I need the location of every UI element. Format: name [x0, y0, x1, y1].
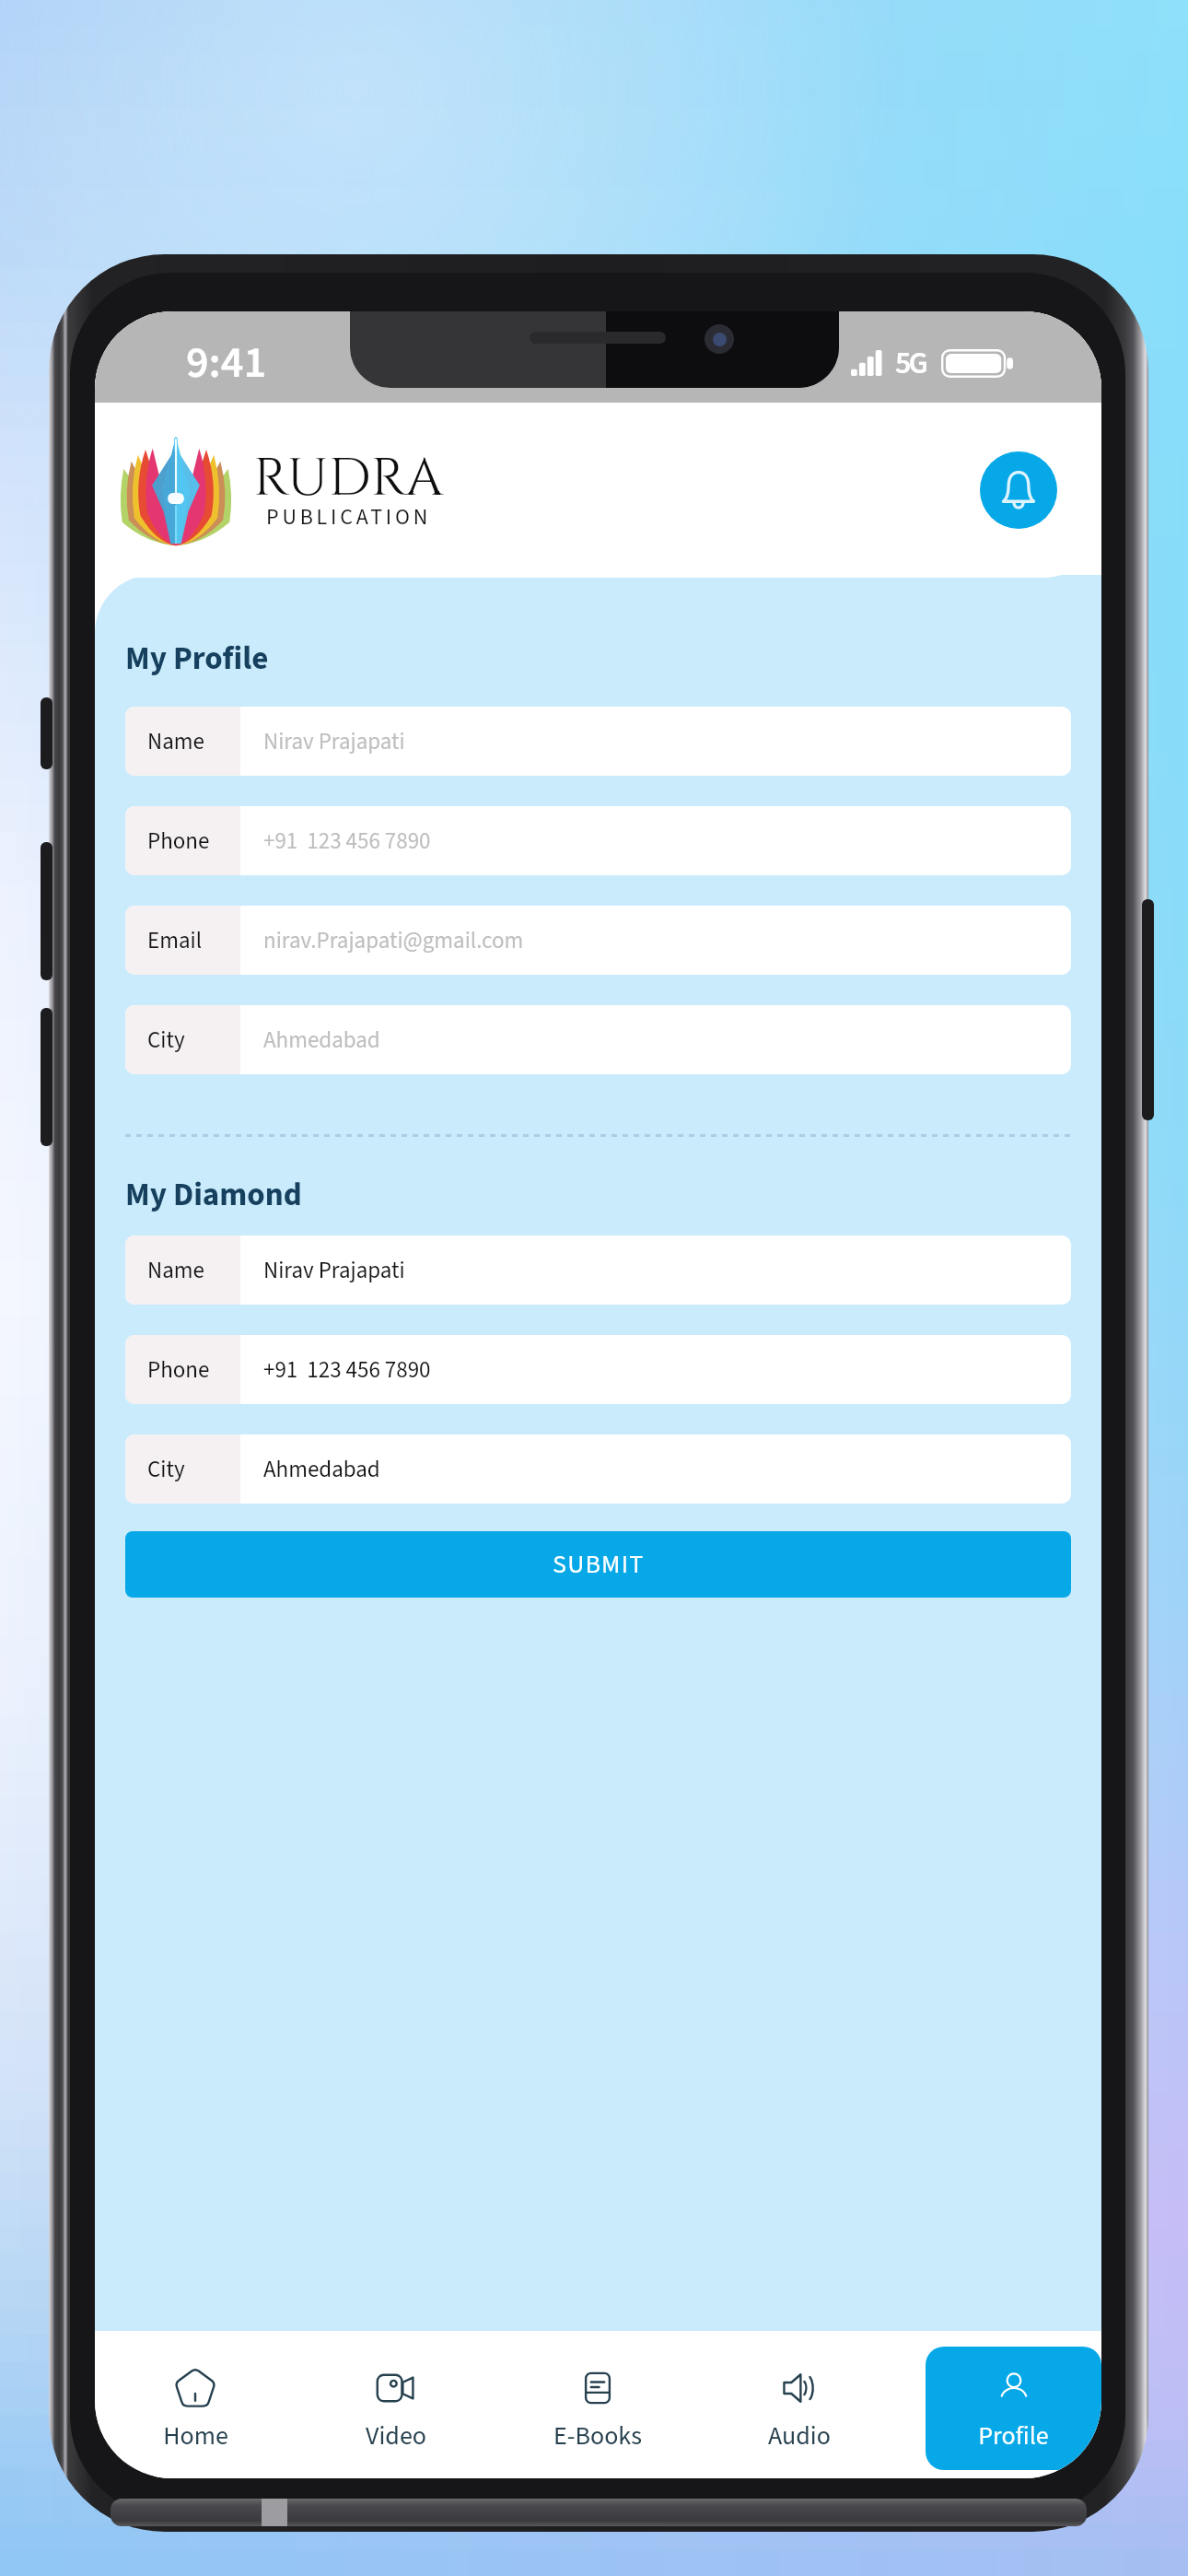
button[interactable]: Profile — [926, 2347, 1101, 2470]
staticText: My Diamond — [125, 1172, 302, 1218]
staticText: Nirav Prajapati — [263, 725, 405, 758]
button[interactable]: Phone — [125, 1335, 1071, 1404]
button[interactable]: Name — [125, 707, 1071, 776]
button[interactable]: Notifications — [980, 451, 1057, 529]
button[interactable]: City — [125, 1434, 1071, 1504]
staticText: Name — [147, 1254, 204, 1287]
staticText: City — [147, 1024, 185, 1057]
button[interactable]: Audio — [698, 2347, 900, 2463]
staticText: E-Books — [553, 2418, 642, 2454]
staticText: +91 123 456 7890 — [263, 1353, 431, 1387]
staticText: Profile — [978, 2418, 1049, 2454]
staticText: Ahmedabad — [263, 1024, 380, 1057]
staticText: SUBMIT — [553, 1546, 645, 1583]
button[interactable]: City — [125, 1005, 1071, 1074]
staticText: Ahmedabad — [263, 1453, 380, 1486]
staticText: 9:41 — [186, 332, 267, 394]
staticText: Email — [147, 924, 203, 957]
button[interactable]: SUBMIT — [125, 1531, 1071, 1598]
staticText: Video — [366, 2418, 426, 2454]
button[interactable]: E-Books — [496, 2347, 698, 2463]
staticText: +91 123 456 7890 — [263, 825, 431, 858]
staticText: 5G — [895, 341, 926, 385]
staticText: Home — [163, 2418, 228, 2454]
staticText: My Profile — [125, 636, 269, 682]
staticText: Name — [147, 725, 204, 758]
button[interactable]: Name — [125, 1235, 1071, 1305]
staticText: City — [147, 1453, 185, 1486]
staticText: nirav.Prajapati@gmail.com — [263, 924, 524, 957]
button[interactable]: Phone — [125, 806, 1071, 875]
staticText: Audio — [768, 2418, 831, 2454]
button[interactable]: Home — [95, 2347, 296, 2463]
button[interactable]: Video — [296, 2347, 496, 2463]
staticText: Phone — [147, 1353, 210, 1387]
button[interactable]: Email — [125, 906, 1071, 975]
staticText: Nirav Prajapati — [263, 1254, 405, 1287]
staticText: PUBLICATION — [266, 501, 432, 533]
staticText: RUDRA — [253, 443, 445, 514]
staticText: Phone — [147, 825, 210, 858]
